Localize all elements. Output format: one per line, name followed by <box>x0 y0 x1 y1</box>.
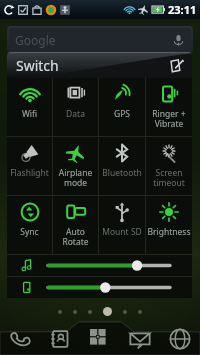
button[interactable]: Brightness <box>146 196 192 254</box>
staticText: Google <box>15 32 56 48</box>
staticText: Airplane mode <box>53 167 98 188</box>
button[interactable]: Google Search <box>7 26 193 54</box>
button[interactable]: Messaging <box>120 322 160 355</box>
staticText: Sync <box>7 226 52 238</box>
button[interactable]: GPS <box>99 78 145 136</box>
staticText: Mount SD <box>99 226 145 238</box>
staticText: Ringer + Vibrate <box>146 108 192 129</box>
button[interactable]: Edit switches <box>166 55 186 75</box>
button[interactable]: Phone <box>0 322 40 355</box>
button[interactable]: Ringer + Vibrate <box>146 78 192 136</box>
staticText: Brightness <box>146 226 192 238</box>
button[interactable] <box>7 255 192 276</box>
staticText: GPS <box>99 108 145 120</box>
staticText: Switch <box>16 56 59 75</box>
button[interactable]: Screen timeout <box>146 137 192 195</box>
staticText: Bluetooth <box>99 167 145 179</box>
staticText: Auto Rotate <box>53 226 98 247</box>
button[interactable]: Browser <box>160 322 200 355</box>
staticText: Screen timeout <box>146 167 192 188</box>
staticText: Data <box>53 108 98 120</box>
button[interactable]: Flashlight <box>7 137 52 195</box>
button[interactable]: Mount SD <box>99 196 145 254</box>
button[interactable]: Bluetooth <box>99 137 145 195</box>
button[interactable]: Data <box>53 78 98 136</box>
button[interactable]: Wifi <box>7 78 52 136</box>
button[interactable]: Auto Rotate <box>53 196 98 254</box>
staticText: 23:11 <box>168 2 197 17</box>
button[interactable]: Apps <box>80 322 120 355</box>
button[interactable] <box>7 277 192 298</box>
button[interactable]: Contacts <box>40 322 80 355</box>
staticText: Flashlight <box>7 167 52 179</box>
button[interactable]: Sync <box>7 196 52 254</box>
staticText: Wifi <box>7 108 52 120</box>
button[interactable]: Airplane mode <box>53 137 98 195</box>
button[interactable]: Switch <box>7 52 192 78</box>
